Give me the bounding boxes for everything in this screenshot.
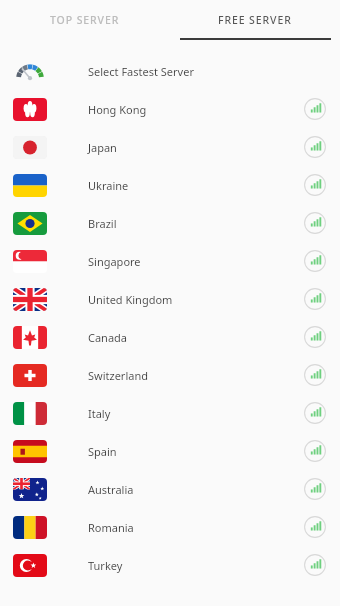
staticText: Brazil [88, 216, 117, 231]
other: Signal strength for Canada [303, 325, 327, 349]
other: Signal strength for Australia [303, 477, 327, 501]
other: Signal strength for Italy [303, 401, 327, 425]
button[interactable]: Switzerland [0, 356, 340, 394]
staticText: Spain [88, 444, 117, 459]
staticText: FREE SERVER [218, 13, 292, 27]
staticText: Canada [88, 330, 128, 345]
staticText: Australia [88, 482, 134, 497]
other: Signal strength for Switzerland [303, 363, 327, 387]
staticText: Romania [88, 520, 134, 535]
button[interactable]: Spain [0, 432, 340, 470]
button[interactable]: Select Fastest Server [0, 52, 340, 90]
other: Signal strength for Brazil [303, 211, 327, 235]
staticText: Select Fastest Server [88, 64, 194, 79]
other: Signal strength for Turkey [303, 553, 327, 577]
button[interactable]: Australia [0, 470, 340, 508]
staticText: Japan [88, 140, 117, 155]
button[interactable]: FREE SERVER [170, 0, 340, 40]
button[interactable]: Turkey [0, 546, 340, 584]
button[interactable]: United Kingdom [0, 280, 340, 318]
button[interactable]: Singapore [0, 242, 340, 280]
button[interactable]: Hong Kong [0, 90, 340, 128]
button[interactable]: Italy [0, 394, 340, 432]
button[interactable]: Romania [0, 508, 340, 546]
staticText: Turkey [88, 558, 123, 573]
staticText: Italy [88, 406, 111, 421]
other: Signal strength for United Kingdom [303, 287, 327, 311]
staticText: United Kingdom [88, 292, 173, 307]
staticText: Ukraine [88, 178, 129, 193]
button[interactable]: Japan [0, 128, 340, 166]
other: Signal strength for Spain [303, 439, 327, 463]
button[interactable]: Ukraine [0, 166, 340, 204]
other: Signal strength for Singapore [303, 249, 327, 273]
staticText: TOP SERVER [50, 13, 120, 27]
button[interactable]: Brazil [0, 204, 340, 242]
button[interactable]: TOP SERVER [0, 0, 170, 40]
staticText: Hong Kong [88, 102, 147, 117]
staticText: Singapore [88, 254, 141, 269]
other: Signal strength for Japan [303, 135, 327, 159]
other: Signal strength for Ukraine [303, 173, 327, 197]
other: Signal strength for Hong Kong [303, 97, 327, 121]
other: Signal strength for Romania [303, 515, 327, 539]
staticText: Switzerland [88, 368, 148, 383]
button[interactable]: Canada [0, 318, 340, 356]
